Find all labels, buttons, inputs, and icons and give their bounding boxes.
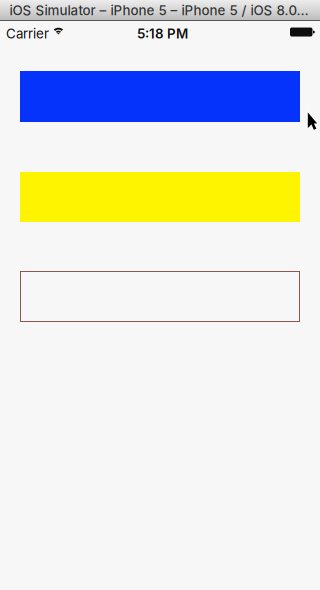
staticText: Carrier [6,25,49,42]
staticText: 5:18 PM [137,25,188,42]
staticText: iOS Simulator – iPhone 5 – iPhone 5 / iO… [9,2,308,18]
